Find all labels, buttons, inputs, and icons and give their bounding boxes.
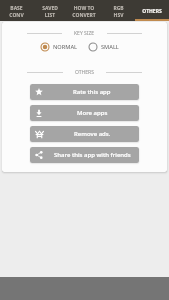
staticText: OTHERS (75, 69, 94, 76)
button[interactable]: More apps (30, 105, 139, 121)
staticText: BASE CONV (9, 5, 24, 18)
button[interactable]: Remove ads. (30, 126, 139, 142)
staticText: Remove ads. (74, 130, 111, 138)
button[interactable]: SAVED LIST (33, 0, 67, 21)
staticText: SAVED LIST (42, 5, 58, 18)
staticText: More apps (77, 109, 108, 117)
button[interactable]: BASE CONV (0, 0, 33, 21)
button[interactable]: HOW TO CONVERT (67, 0, 101, 21)
staticText: OTHERS (142, 8, 162, 15)
staticText: Share this app with friends (54, 151, 131, 159)
staticText: NORMAL (53, 43, 78, 51)
staticText: HOW TO CONVERT (72, 5, 96, 18)
button[interactable]: Rate this app (30, 84, 139, 100)
button[interactable]: Share this app with friends (30, 147, 139, 163)
button[interactable]: OTHERS (135, 0, 169, 21)
button[interactable]: SMALL (88, 42, 119, 52)
staticText: KEY SIZE (74, 30, 95, 37)
staticText: Rate this app (73, 88, 111, 96)
button[interactable]: NORMAL (40, 42, 78, 52)
staticText: SMALL (101, 43, 119, 51)
button[interactable]: RGB HSV (101, 0, 135, 21)
staticText: RGB HSV (113, 5, 124, 18)
